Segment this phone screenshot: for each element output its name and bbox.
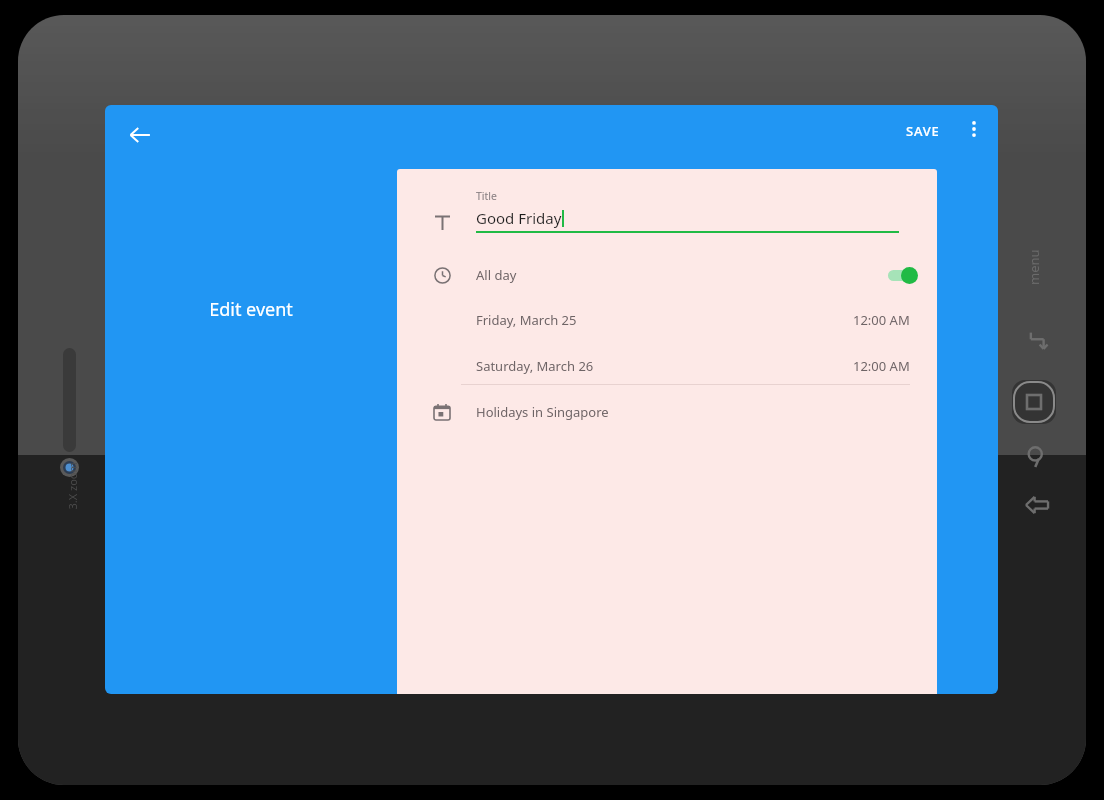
staticText: 3.X zoom xyxy=(64,461,79,509)
button[interactable]: Home xyxy=(1012,380,1056,424)
button[interactable]: Rotate xyxy=(1018,322,1056,360)
button[interactable]: SAVE xyxy=(896,113,950,149)
staticText: Saturday, March 26 xyxy=(476,357,594,375)
staticText: 12:00 AM xyxy=(853,311,910,329)
button[interactable]: All day xyxy=(461,257,919,293)
staticText: Edit event xyxy=(209,297,293,322)
staticText: 12:00 AM xyxy=(853,357,910,375)
button[interactable]: Navigate up xyxy=(116,111,164,159)
staticText: SAVE xyxy=(906,122,940,140)
staticText: menu xyxy=(1025,249,1043,285)
button[interactable]: Saturday, March 26 xyxy=(461,348,919,384)
staticText: All day xyxy=(476,266,517,284)
button[interactable]: Friday, March 25 xyxy=(461,302,919,338)
button[interactable]: Good Friday xyxy=(476,208,899,228)
staticText: Title xyxy=(476,189,497,203)
staticText: Good Friday xyxy=(476,208,562,228)
button[interactable]: Back xyxy=(1018,486,1056,524)
staticText: Friday, March 25 xyxy=(476,311,577,329)
button[interactable]: Holidays in Singapore xyxy=(461,394,919,430)
button[interactable]: More options xyxy=(952,107,996,151)
staticText: Holidays in Singapore xyxy=(476,403,609,421)
button[interactable]: Search xyxy=(1018,438,1056,476)
